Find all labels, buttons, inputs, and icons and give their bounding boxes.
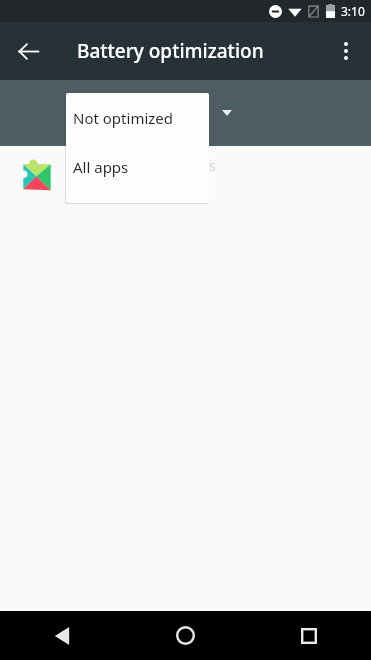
staticText: Not optimized [73, 108, 174, 128]
button[interactable]: Recent apps [247, 611, 371, 660]
staticText: 3:10 [341, 3, 365, 19]
button[interactable]: All apps [66, 142, 209, 191]
button[interactable]: Back [0, 611, 123, 660]
staticText: Battery optimization [77, 38, 264, 64]
button[interactable]: Back [8, 31, 48, 71]
button[interactable]: Not optimized [66, 93, 209, 142]
staticText: Google Play services [72, 155, 216, 175]
button[interactable]: Home [123, 611, 247, 660]
staticText: All apps [73, 157, 129, 177]
button[interactable]: Google Play services [0, 146, 371, 204]
button[interactable]: More options [326, 31, 366, 71]
button[interactable]: Filter spinner [214, 100, 240, 126]
